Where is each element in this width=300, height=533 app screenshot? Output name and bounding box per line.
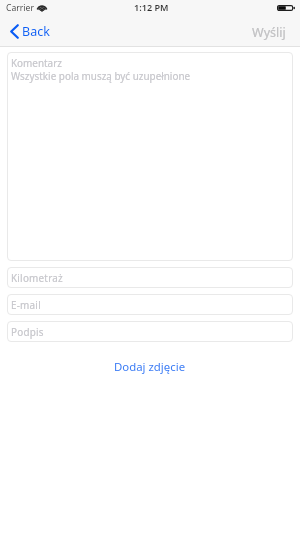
button[interactable]: E-mail — [7, 294, 293, 315]
staticText: Kilometraż — [11, 271, 63, 284]
staticText: Podpis — [11, 325, 44, 338]
staticText: Dodaj zdjęcie — [114, 359, 186, 375]
staticText: Wszystkie pola muszą być uzupełnione — [11, 69, 191, 82]
button[interactable]: Podpis — [7, 321, 293, 342]
other: Battery — [277, 5, 295, 11]
staticText: Wyślij — [252, 24, 286, 41]
button[interactable]: Komentarz — [7, 52, 293, 261]
staticText: Back — [22, 23, 50, 40]
button[interactable]: Kilometraż — [7, 267, 293, 288]
staticText: Komentarz — [11, 56, 62, 69]
button[interactable]: Back — [0, 18, 56, 47]
button[interactable]: Wyślij — [242, 18, 300, 47]
other: Wi-Fi signal — [37, 4, 47, 11]
staticText: 1:12 PM — [134, 1, 169, 13]
button[interactable]: Dodaj zdjęcie — [102, 354, 198, 380]
staticText: E-mail — [11, 298, 41, 311]
staticText: Carrier — [6, 2, 34, 14]
